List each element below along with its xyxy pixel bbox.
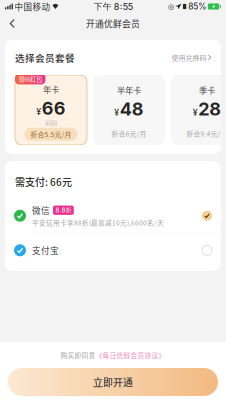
button[interactable]: 支付宝 bbox=[5, 233, 221, 267]
button[interactable]: 《每日优鲜会员协议》 bbox=[95, 350, 165, 360]
staticText: 购买即同意 bbox=[60, 350, 95, 360]
button[interactable]: 半年卡 bbox=[93, 75, 165, 145]
staticText: 折合5.5元/月 bbox=[30, 129, 71, 139]
staticText: 平安信用卡享88折(最高减10元),6600名/天 bbox=[32, 218, 164, 227]
staticText: 支付宝 bbox=[32, 244, 59, 256]
staticText: 需支付: 66元 bbox=[15, 174, 72, 189]
staticText: 半年卡 bbox=[117, 84, 141, 96]
staticText: 《每日优鲜会员协议》 bbox=[95, 350, 165, 360]
staticText: 8.8折 bbox=[55, 206, 71, 214]
button[interactable]: 返回 bbox=[0, 13, 24, 34]
button[interactable]: 立即开通 bbox=[8, 368, 218, 396]
staticText: 微信 bbox=[32, 204, 50, 216]
button[interactable]: 年卡 bbox=[15, 75, 87, 145]
button[interactable]: 使用兑换码 bbox=[171, 52, 211, 62]
staticText: 66 bbox=[42, 97, 66, 119]
staticText: 85% bbox=[188, 1, 206, 11]
staticText: 折合8元/月 bbox=[111, 129, 146, 138]
staticText: 48 bbox=[120, 98, 144, 120]
staticText: 折合9.4元/月 bbox=[186, 129, 226, 138]
staticText: 下午 8:55 bbox=[94, 1, 133, 12]
staticText: ¥ bbox=[193, 107, 198, 118]
staticText: 中国移动 bbox=[14, 0, 50, 13]
staticText: 选择会员套餐 bbox=[15, 50, 75, 64]
staticText: 领66红包 bbox=[18, 74, 42, 83]
staticText: 28 bbox=[198, 98, 221, 120]
staticText: ◎ bbox=[168, 2, 174, 11]
button[interactable]: 季卡 bbox=[171, 75, 226, 145]
staticText: 开通优鲜会员 bbox=[86, 17, 140, 30]
staticText: 使用兑换码 bbox=[171, 52, 206, 62]
staticText: ¥ bbox=[36, 107, 41, 117]
staticText: 季卡 bbox=[199, 84, 215, 96]
staticText: 年卡 bbox=[43, 83, 59, 95]
staticText: 立即开通 bbox=[93, 375, 133, 389]
button[interactable]: 微信 bbox=[5, 199, 221, 233]
staticText: ¥88 bbox=[45, 119, 57, 128]
staticText: ¥ bbox=[114, 107, 119, 118]
